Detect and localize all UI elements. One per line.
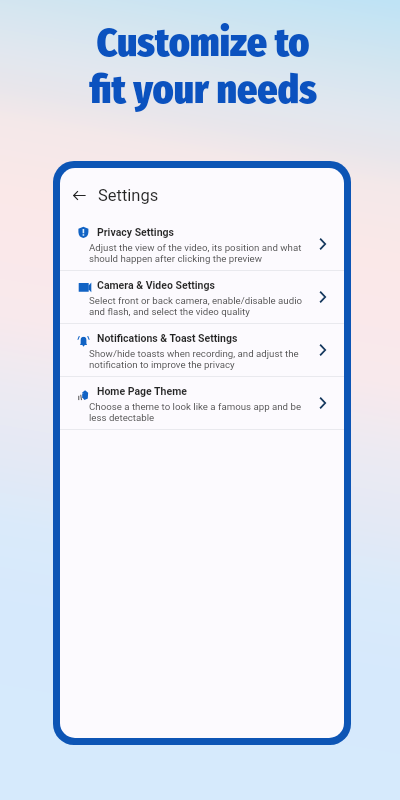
button[interactable]: Notifications & Toast Settings [60, 324, 344, 377]
button[interactable]: Open [312, 393, 332, 413]
staticText: Notifications & Toast Settings [97, 332, 238, 344]
staticText: Choose a theme to look like a famous app… [89, 401, 302, 423]
button[interactable]: Privacy Settings [60, 218, 344, 271]
staticText: Privacy Settings [97, 226, 174, 238]
staticText: Show/hide toasts when recording, and adj… [89, 348, 299, 370]
staticText: Camera & Video Settings [97, 279, 215, 291]
button[interactable]: Open [312, 234, 332, 254]
button[interactable]: Open [312, 287, 332, 307]
button[interactable]: Back [68, 184, 90, 206]
staticText: Select front or back camera, enable/disa… [89, 295, 303, 317]
staticText: Settings [98, 186, 159, 205]
button[interactable]: Home Page Theme [60, 377, 344, 430]
button[interactable]: Open [312, 340, 332, 360]
staticText: fit your needs [89, 66, 317, 113]
staticText: Home Page Theme [97, 385, 187, 397]
staticText: Adjust the view of the video, its positi… [89, 242, 302, 264]
staticText: Customize to [96, 19, 310, 66]
button[interactable]: Camera & Video Settings [60, 271, 344, 324]
